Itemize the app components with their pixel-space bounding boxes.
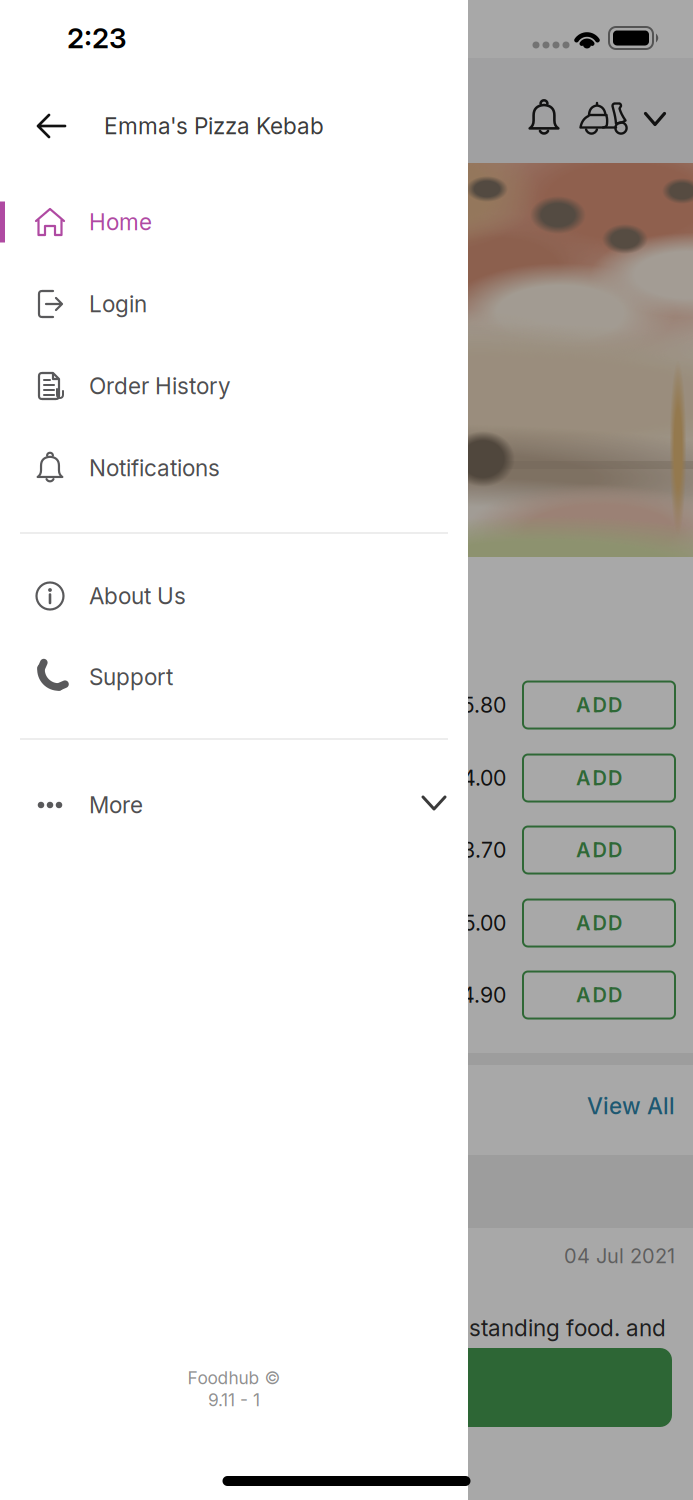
button[interactable]: Home (10, 187, 458, 257)
button[interactable]: About Us (10, 561, 458, 631)
staticText: ADD (576, 983, 622, 1007)
staticText: 2:23 (67, 21, 127, 54)
button[interactable]: Order History (10, 351, 458, 421)
staticText: Emma's Pizza Kebab (104, 113, 324, 139)
staticText: Support (89, 664, 173, 690)
button[interactable]: ADD (523, 754, 675, 801)
button[interactable]: Order type delivery (573, 91, 637, 147)
staticText: £4.90 (448, 982, 506, 1008)
staticText: ADD (576, 838, 622, 862)
button[interactable]: Back (28, 102, 76, 150)
button[interactable]: ADD (523, 899, 675, 946)
staticText: ADD (576, 693, 622, 717)
button[interactable]: ADD (523, 971, 675, 1018)
staticText: 04 Jul 2021 (564, 1244, 675, 1268)
staticText: About Us (89, 583, 186, 609)
button[interactable]: Notifications (10, 433, 458, 503)
staticText: More (89, 792, 143, 818)
staticText: Order History (89, 373, 231, 399)
button[interactable]: ADD (523, 826, 675, 873)
staticText: Notifications (89, 455, 220, 481)
staticText: Login (89, 291, 147, 317)
button[interactable]: ADD (523, 681, 675, 728)
button[interactable]: Support (10, 642, 458, 712)
button[interactable]: Login (10, 269, 458, 339)
button[interactable]: Notifications (516, 91, 572, 147)
staticText: standing food. and (469, 1315, 666, 1341)
staticText: £5.00 (450, 910, 506, 936)
staticText: £5.80 (449, 692, 506, 718)
staticText: ADD (576, 911, 622, 935)
staticText: View All (587, 1093, 675, 1119)
staticText: £4.00 (449, 765, 506, 791)
staticText: ADD (576, 766, 622, 790)
button[interactable]: Expand (635, 99, 675, 139)
button[interactable]: More (10, 770, 458, 840)
button[interactable]: View All (475, 1081, 675, 1131)
staticText: £3.70 (449, 837, 506, 863)
staticText: Foodhub © (187, 1368, 280, 1388)
staticText: 9.11 - 1 (208, 1390, 260, 1410)
button[interactable]: Write a review (18, 1348, 672, 1427)
staticText: Home (89, 209, 152, 235)
